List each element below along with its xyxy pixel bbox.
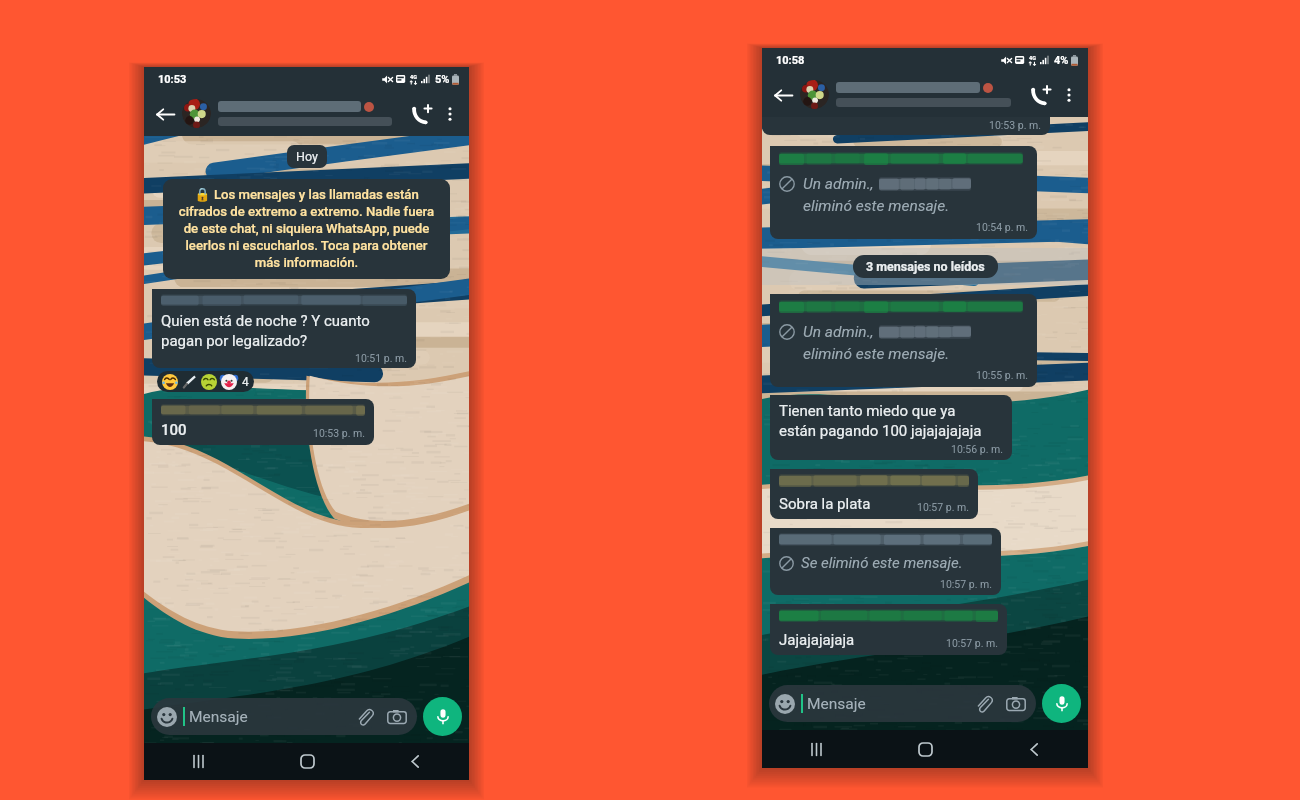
button[interactable]: Video call	[1024, 79, 1056, 111]
button[interactable]: Camera	[1006, 694, 1026, 714]
button[interactable]: Mensaje	[769, 685, 1036, 722]
staticText: 4G	[410, 74, 417, 80]
button[interactable]: Se eliminó este mensaje.	[770, 528, 1001, 595]
staticText: 10:57 p. m.	[940, 578, 992, 590]
staticText: 5%	[435, 73, 450, 86]
staticText: 4	[242, 375, 249, 389]
button[interactable]: 100	[152, 399, 374, 445]
button[interactable]: Hoy	[287, 145, 327, 168]
staticText: Un admin.,	[803, 323, 874, 341]
button[interactable]: Chat info	[836, 82, 1020, 107]
button[interactable]: Mensaje	[151, 698, 417, 735]
button[interactable]: Attach	[974, 694, 994, 714]
staticText: 10:56 p. m.	[951, 443, 1003, 455]
button[interactable]: Voice message	[423, 697, 462, 736]
staticText: Se eliminó este mensaje.	[801, 554, 963, 572]
staticText: 🔒 Los mensajes y las llamadas están cifr…	[172, 187, 441, 271]
staticText: Tienen tanto miedo que ya están pagando …	[779, 402, 982, 439]
button[interactable]: More options	[1056, 82, 1082, 108]
staticText: 10:51 p. m.	[355, 352, 407, 364]
button[interactable]: Camera	[387, 707, 407, 727]
button[interactable]: Back	[393, 743, 437, 780]
staticText: 10:54 p. m.	[976, 221, 1028, 233]
staticText: Sobra la plata	[779, 495, 871, 513]
staticText: 10:53	[158, 73, 187, 86]
button[interactable]: Chat info	[218, 101, 401, 126]
staticText: Mensaje	[807, 695, 866, 713]
staticText: 3 mensajes no leídos	[866, 259, 985, 274]
button[interactable]: Back	[768, 80, 798, 110]
button[interactable]: Jajajajajaja	[770, 604, 1007, 655]
staticText: 10:53 p. m.	[989, 119, 1041, 131]
staticText: 10:58	[776, 54, 805, 67]
button[interactable]: Attach	[355, 707, 375, 727]
button[interactable]: Profile	[182, 99, 211, 128]
staticText: eliminó este mensaje.	[803, 197, 950, 215]
button[interactable]: Profile	[800, 80, 829, 109]
button[interactable]: More options	[437, 101, 463, 127]
button[interactable]: Video call	[405, 98, 437, 130]
button[interactable]: Voice message	[1042, 684, 1081, 723]
staticText: 10:53 p. m.	[313, 427, 365, 439]
staticText: 4%	[1054, 54, 1069, 67]
button[interactable]: Recents	[794, 730, 838, 768]
button[interactable]: Quien está de noche ? Y cuanto pagan por…	[152, 289, 416, 368]
button[interactable]: Tienen tanto miedo que ya están pagando …	[770, 395, 1012, 460]
button[interactable]: Reactions	[157, 371, 254, 392]
button[interactable]: Back	[150, 99, 180, 129]
staticText: 10:55 p. m.	[976, 369, 1028, 381]
staticText: 4G	[1029, 55, 1036, 61]
staticText: Quien está de noche ? Y cuanto pagan por…	[161, 312, 407, 349]
staticText: eliminó este mensaje.	[803, 345, 950, 363]
staticText: Jajajajajaja	[779, 631, 855, 649]
button[interactable]: Un admin.,	[770, 294, 1037, 387]
staticText: 10:57 p. m.	[917, 501, 969, 513]
staticText: 10:57 p. m.	[946, 637, 998, 649]
button[interactable]: 🔒 Los mensajes y las llamadas están cifr…	[163, 179, 450, 279]
button[interactable]: Recents	[176, 743, 220, 780]
button[interactable]: Un admin.,	[770, 146, 1037, 239]
button[interactable]: Sobra la plata	[770, 469, 978, 519]
button[interactable]: 3 mensajes no leídos	[853, 255, 998, 278]
button[interactable]: Home	[285, 743, 329, 780]
staticText: Hoy	[296, 149, 318, 164]
button[interactable]: Back	[1012, 730, 1056, 768]
staticText: Un admin.,	[803, 175, 874, 193]
staticText: Mensaje	[189, 708, 248, 726]
button[interactable]: 10:53 p. m.	[762, 117, 1050, 135]
staticText: 100	[161, 421, 187, 439]
button[interactable]: Home	[903, 730, 947, 768]
